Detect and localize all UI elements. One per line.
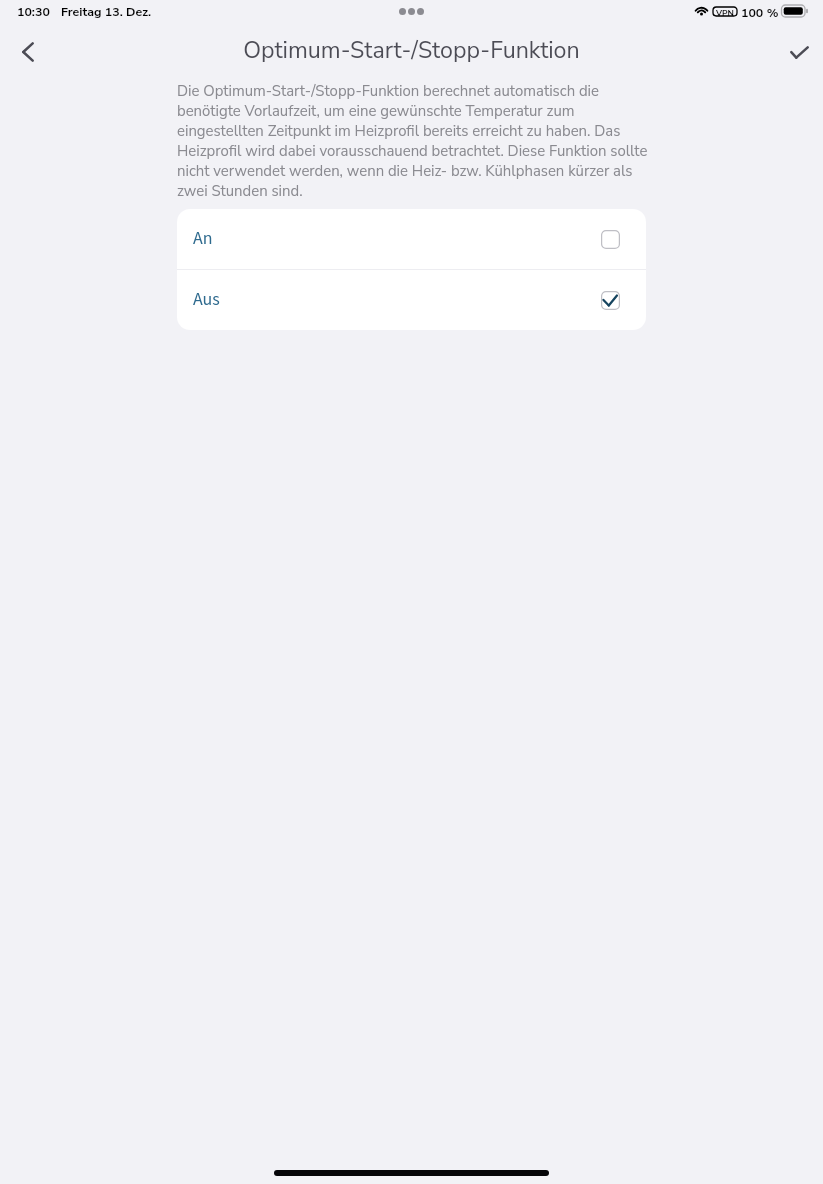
staticText: Freitag 13. Dez.: [61, 3, 152, 20]
staticText: An: [193, 226, 213, 251]
button[interactable]: Confirm: [777, 30, 821, 74]
staticText: Optimum-Start-/Stopp-Funktion: [243, 35, 580, 67]
staticText: VPN: [716, 7, 734, 16]
button[interactable]: An: [177, 209, 646, 269]
staticText: 100 %: [741, 4, 779, 21]
staticText: Aus: [193, 287, 220, 312]
button[interactable]: Aus: [177, 270, 646, 330]
staticText: Die Optimum-Start-/Stopp-Funktion berech…: [177, 81, 655, 201]
button[interactable]: Back: [6, 30, 50, 74]
staticText: 10:30: [17, 3, 50, 20]
